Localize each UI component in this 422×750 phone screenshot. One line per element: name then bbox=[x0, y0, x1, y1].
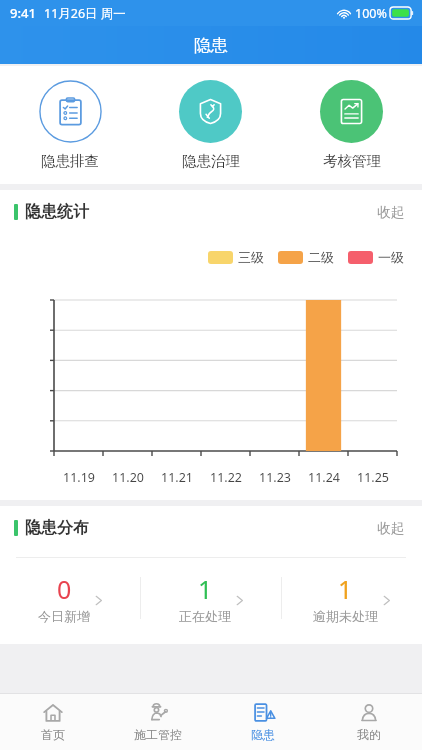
button[interactable]: 首页 bbox=[0, 694, 105, 750]
button[interactable]: 隐患排查 bbox=[0, 80, 140, 170]
staticText: 11.20 bbox=[112, 469, 144, 486]
staticText: 隐患 bbox=[251, 727, 275, 742]
staticText: 9:41 bbox=[10, 4, 36, 22]
staticText: 11.23 bbox=[259, 469, 291, 486]
staticText: 收起 bbox=[377, 520, 404, 537]
staticText: 首页 bbox=[41, 727, 65, 742]
staticText: 隐患治理 bbox=[182, 152, 240, 170]
staticText: 今日新增 bbox=[38, 608, 90, 624]
button[interactable]: 1 bbox=[141, 558, 281, 638]
other: 首页 bbox=[42, 702, 64, 724]
staticText: 我的 bbox=[357, 727, 381, 742]
button[interactable]: 我的 bbox=[316, 694, 422, 750]
staticText: 11.24 bbox=[308, 469, 340, 486]
button[interactable]: 施工管控 bbox=[105, 694, 210, 750]
other: 我的 bbox=[358, 702, 380, 724]
staticText: 正在处理 bbox=[179, 608, 231, 624]
staticText: 11.25 bbox=[357, 469, 389, 486]
staticText: 11.19 bbox=[63, 469, 95, 486]
staticText: 考核管理 bbox=[323, 152, 381, 170]
button[interactable]: 收起 bbox=[375, 200, 406, 225]
staticText: 100% bbox=[355, 5, 387, 22]
button[interactable]: 隐患治理 bbox=[140, 80, 281, 170]
staticText: 隐患分布 bbox=[25, 518, 89, 538]
staticText: 11.21 bbox=[161, 469, 193, 486]
staticText: 1 bbox=[338, 572, 353, 606]
staticText: 隐患统计 bbox=[25, 202, 89, 222]
staticText: 1 bbox=[198, 572, 213, 606]
staticText: 隐患 bbox=[194, 35, 228, 56]
staticText: 0 bbox=[57, 572, 72, 606]
button[interactable]: 考核管理 bbox=[281, 80, 422, 170]
staticText: 施工管控 bbox=[134, 727, 182, 742]
staticText: 隐患排查 bbox=[41, 152, 99, 170]
staticText: 11月26日 周一 bbox=[44, 5, 126, 22]
button[interactable]: 隐患 bbox=[210, 694, 316, 750]
staticText: 三级 bbox=[238, 249, 264, 265]
staticText: 收起 bbox=[377, 204, 404, 221]
staticText: 逾期未处理 bbox=[313, 608, 378, 624]
other: 施工管控 bbox=[147, 702, 169, 724]
button[interactable]: 0 bbox=[0, 558, 140, 638]
staticText: 二级 bbox=[308, 249, 334, 265]
other: 隐患 bbox=[252, 702, 274, 724]
staticText: 一级 bbox=[378, 249, 404, 265]
staticText: 11.22 bbox=[210, 469, 242, 486]
button[interactable]: 1 bbox=[282, 558, 422, 638]
button[interactable]: 收起 bbox=[375, 516, 406, 541]
